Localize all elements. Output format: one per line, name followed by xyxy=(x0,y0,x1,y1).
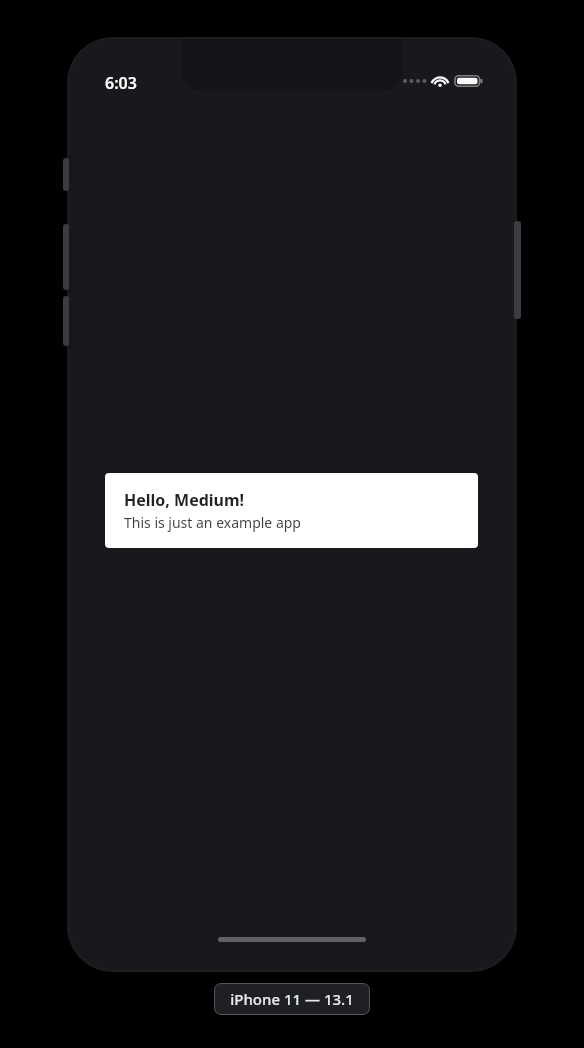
staticText: iPhone 11 — 13.1 xyxy=(230,989,354,1009)
other: Home indicator xyxy=(218,937,366,942)
button[interactable]: Silent switch xyxy=(63,158,69,191)
button[interactable]: Volume down xyxy=(63,296,69,346)
staticText: Hello, Medium! xyxy=(124,489,245,511)
button[interactable]: Power xyxy=(514,221,521,319)
staticText: This is just an example app xyxy=(124,513,301,532)
button[interactable]: Volume up xyxy=(63,224,69,290)
button[interactable]: iPhone 11 — 13.1 xyxy=(214,983,370,1015)
staticText: 6:03 xyxy=(105,72,137,94)
button[interactable]: Hello, Medium! xyxy=(105,473,478,548)
